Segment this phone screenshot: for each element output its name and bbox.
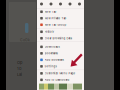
staticText: 10 [17, 66, 22, 71]
staticText: Downloads [45, 45, 60, 48]
button[interactable]: Add to Dashboard [37, 77, 84, 83]
button[interactable]: New Tab Group [37, 21, 84, 28]
staticText: New Private Tab [45, 17, 67, 20]
staticText: Bookmarks [45, 52, 58, 55]
button[interactable]: Bookmarks [37, 50, 84, 57]
button[interactable]: New Tab [37, 8, 84, 15]
staticText: Add to Dashboard [45, 78, 70, 81]
staticText: Settings [45, 65, 57, 68]
staticText: History [45, 30, 54, 33]
staticText: Lai [17, 72, 22, 77]
button[interactable]: Customize Menu Page [37, 70, 84, 77]
button[interactable]: History [37, 28, 84, 35]
button[interactable]: Clear Browsing Data [37, 35, 84, 41]
staticText: CoOk [20, 38, 30, 42]
button[interactable]: Add Bookmark [37, 57, 84, 63]
staticText: Customize Menu Page [45, 72, 76, 75]
button[interactable]: Downloads [37, 44, 84, 50]
staticText: Clear Browsing Data [45, 37, 72, 40]
staticText: New Tab Group [45, 23, 67, 26]
staticText: Op [17, 60, 22, 65]
button[interactable]: New Private Tab [37, 15, 84, 21]
staticText: New Tab [45, 10, 57, 13]
staticText: Add Bookmark [45, 58, 64, 61]
button[interactable]: Settings [37, 63, 84, 70]
